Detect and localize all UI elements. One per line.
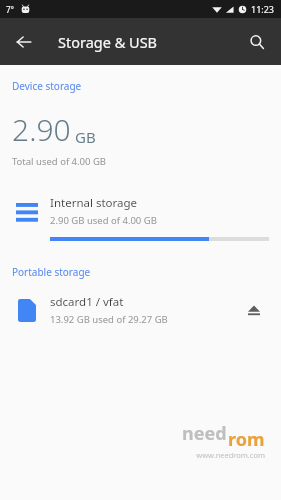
staticText: rom xyxy=(228,427,265,452)
staticText: need xyxy=(182,421,227,446)
staticText: Storage & USB xyxy=(58,32,158,52)
staticText: Internal storage xyxy=(50,195,138,211)
staticText: 11:23 xyxy=(251,3,275,15)
staticText: Device storage xyxy=(12,79,82,93)
staticText: www.needrom.com xyxy=(196,450,265,460)
staticText: 2.90 xyxy=(12,109,71,150)
staticText: 2.90 GB used of 4.00 GB xyxy=(50,214,157,227)
button[interactable]: Back xyxy=(6,24,42,60)
staticText: 13.92 GB used of 29.27 GB xyxy=(50,313,168,326)
staticText: GB xyxy=(75,127,96,147)
staticText: 7° xyxy=(6,4,14,15)
button[interactable]: Eject sdcard1 xyxy=(239,295,269,325)
button[interactable]: Internal storage xyxy=(0,190,281,243)
staticText: Portable storage xyxy=(12,265,91,279)
button[interactable]: Search xyxy=(239,24,275,60)
staticText: Total used of 4.00 GB xyxy=(12,155,107,168)
button[interactable]: sdcard1 / vfat xyxy=(0,293,281,327)
staticText: sdcard1 / vfat xyxy=(50,294,124,310)
